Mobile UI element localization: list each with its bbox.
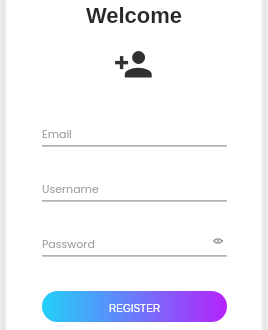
button[interactable]: Username [42, 179, 227, 202]
button[interactable]: Password [42, 234, 227, 257]
staticText: Username [42, 181, 227, 196]
staticText: Password [42, 236, 211, 251]
button[interactable]: REGISTER [42, 291, 227, 322]
staticText: Welcome [0, 3, 268, 28]
button[interactable]: Email [42, 124, 227, 147]
staticText: Email [42, 126, 227, 141]
button[interactable]: Show password [210, 233, 226, 249]
staticText: REGISTER [109, 303, 161, 314]
